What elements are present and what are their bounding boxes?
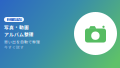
staticText: 思い出を自動で整理: [4, 39, 40, 44]
staticText: 今すぐ試す: [4, 44, 24, 50]
staticText: アルバム整理: [4, 31, 34, 38]
button[interactable]: カメラを開く: [74, 12, 117, 55]
staticText: 写真・動画: [4, 24, 29, 31]
staticText: 新機能追加: [6, 17, 21, 22]
